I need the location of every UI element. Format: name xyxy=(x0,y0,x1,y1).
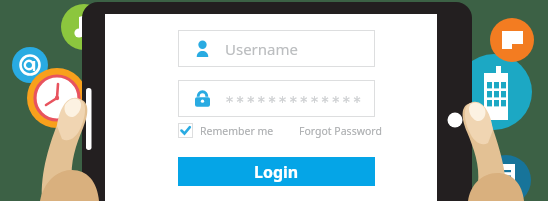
staticText: Forgot Password xyxy=(299,124,382,138)
staticText: ∗∗∗∗∗∗∗∗∗∗∗∗∗ xyxy=(225,93,364,106)
staticText: Remember me xyxy=(200,124,274,138)
button[interactable]: ∗∗∗∗∗∗∗∗∗∗∗∗∗ xyxy=(178,80,375,117)
button[interactable]: Remember me xyxy=(178,122,274,139)
button[interactable]: Forgot Password xyxy=(299,122,382,139)
button[interactable]: Login xyxy=(178,157,375,186)
staticText: Login xyxy=(254,161,299,183)
button[interactable]: Username xyxy=(178,30,375,67)
staticText: Username xyxy=(225,39,298,59)
